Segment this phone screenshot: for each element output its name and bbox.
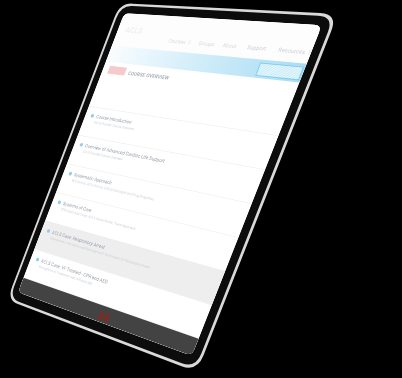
button[interactable]: Tablet showing ACLS course overview list	[0, 0, 402, 378]
